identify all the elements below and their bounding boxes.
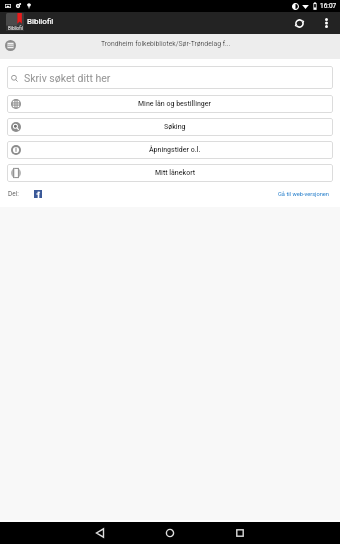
button[interactable]: Søking (7, 118, 333, 136)
button[interactable]: Skriv søket ditt her (7, 66, 333, 89)
staticText: Bibliofil (27, 17, 54, 26)
staticText: Åpningstider o.l. (149, 146, 201, 154)
button[interactable]: Mitt lånekort (7, 164, 333, 182)
button[interactable]: More options (317, 12, 336, 34)
staticText: 16:07 (320, 2, 337, 10)
staticText: Del: (8, 190, 19, 198)
button[interactable]: Åpningstider o.l. (7, 141, 333, 159)
button[interactable]: Back (65, 522, 135, 544)
staticText: Mine lån og bestillinger (138, 100, 212, 108)
staticText: Skriv søket ditt her (24, 72, 111, 84)
staticText: Søking (164, 123, 186, 131)
button[interactable]: Refresh (289, 12, 310, 34)
staticText: Mitt lånekort (155, 169, 196, 177)
staticText: Bibliofil (8, 26, 23, 31)
button[interactable]: Recents (205, 522, 275, 544)
staticText: Trondheim folkebibliotek/Sør-Trøndelag f… (101, 40, 231, 48)
button[interactable]: Gå til web-versjonen (278, 191, 329, 198)
button[interactable]: Home (135, 522, 205, 544)
button[interactable]: Library menu (5, 40, 16, 51)
button[interactable]: Share on Facebook (34, 190, 42, 198)
button[interactable]: Mine lån og bestillinger (7, 95, 333, 113)
